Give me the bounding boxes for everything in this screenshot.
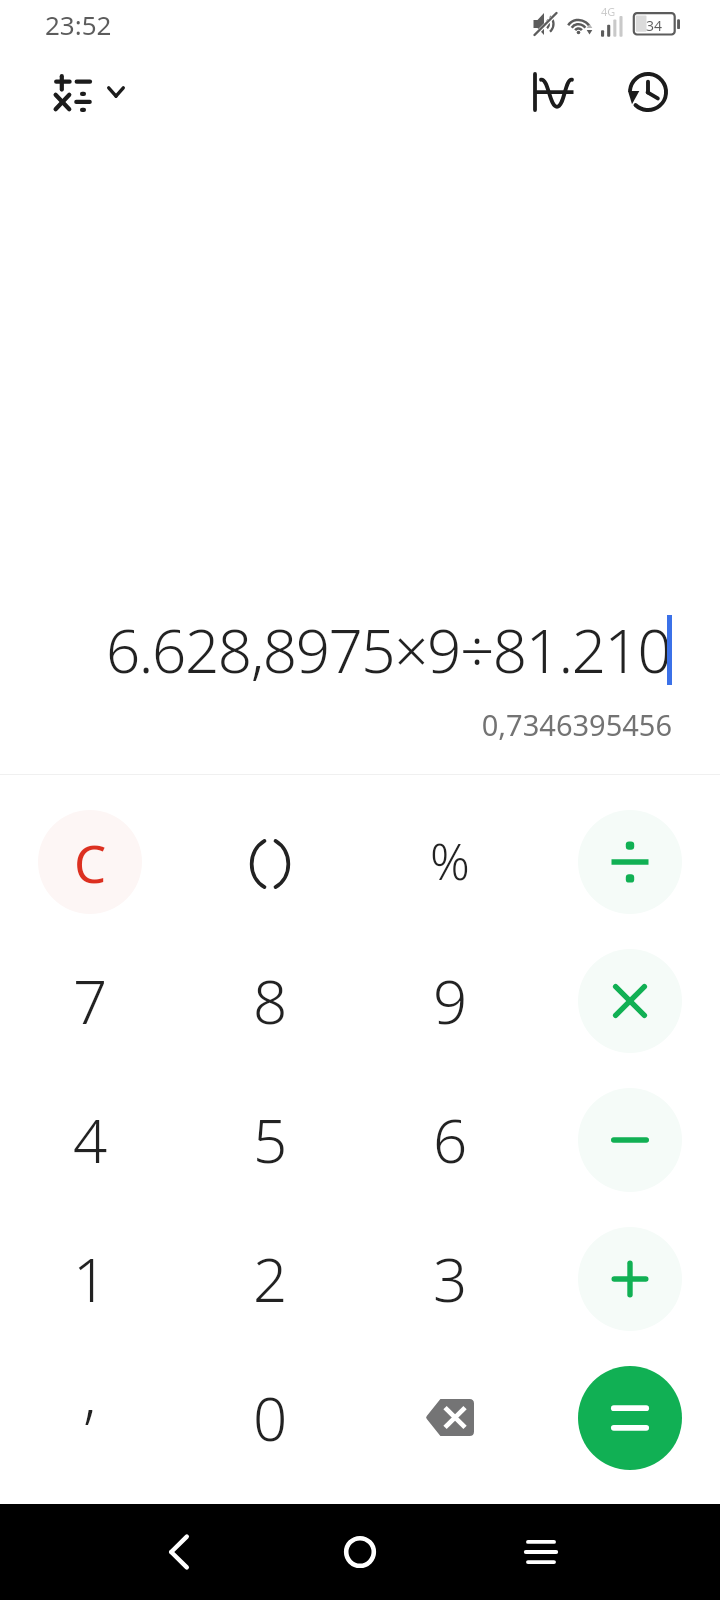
staticText: 5 <box>253 1099 288 1181</box>
button[interactable]: C <box>0 792 180 931</box>
button[interactable]: 0 <box>180 1348 360 1487</box>
button[interactable]: 1 <box>0 1209 180 1348</box>
button[interactable]: Scientific <box>502 48 604 136</box>
button[interactable]: History <box>604 48 692 136</box>
staticText: 0,7346395456 <box>0 705 672 744</box>
button[interactable]: Decimal separator <box>0 1348 180 1487</box>
staticText: 1 <box>73 1238 108 1320</box>
staticText: 8 <box>253 960 288 1042</box>
button[interactable]: 8 <box>180 931 360 1070</box>
staticText: 2 <box>253 1238 288 1320</box>
staticText: 6 <box>433 1099 468 1181</box>
staticText: % <box>430 828 470 895</box>
staticText: 23:52 <box>45 7 112 42</box>
button[interactable]: 2 <box>180 1209 360 1348</box>
staticText: 34 <box>646 16 663 35</box>
button[interactable]: Recent apps <box>450 1504 631 1600</box>
button[interactable]: 7 <box>0 931 180 1070</box>
button[interactable]: % <box>360 792 540 931</box>
button[interactable]: 6 <box>360 1070 540 1209</box>
staticText: 9 <box>433 960 468 1042</box>
button[interactable]: 3 <box>360 1209 540 1348</box>
button[interactable]: Back <box>89 1504 269 1600</box>
staticText: C <box>74 828 107 897</box>
button[interactable]: Parentheses <box>180 792 360 931</box>
staticText: 4G <box>601 4 616 19</box>
button[interactable]: Calculator mode <box>52 72 124 112</box>
staticText: 3 <box>433 1238 468 1320</box>
button[interactable]: Backspace <box>360 1348 540 1487</box>
staticText: , <box>83 1353 97 1435</box>
button[interactable]: 9 <box>360 931 540 1070</box>
button[interactable]: 4 <box>0 1070 180 1209</box>
staticText: 7 <box>73 960 108 1042</box>
staticText: 4 <box>73 1099 108 1181</box>
button[interactable]: Subtract <box>540 1070 720 1209</box>
button[interactable]: Home <box>269 1504 450 1600</box>
button[interactable]: Multiply <box>540 931 720 1070</box>
button[interactable]: Add <box>540 1209 720 1348</box>
button[interactable]: Equals <box>540 1348 720 1487</box>
staticText: 0 <box>253 1377 288 1459</box>
staticText: 6.628,8975×9÷81.210 <box>106 609 671 691</box>
button[interactable]: Divide <box>540 792 720 931</box>
button[interactable]: 5 <box>180 1070 360 1209</box>
